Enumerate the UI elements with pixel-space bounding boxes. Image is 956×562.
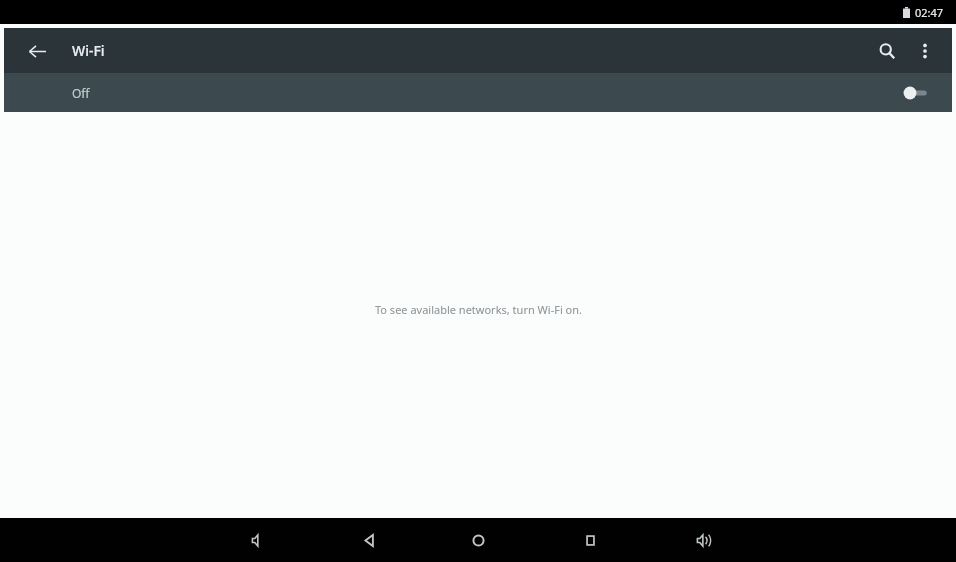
staticText: 02:47 xyxy=(915,5,944,20)
button[interactable]: Home xyxy=(454,518,502,562)
button[interactable]: Recent apps xyxy=(566,518,614,562)
button[interactable]: Volume up xyxy=(678,518,726,562)
staticText: To see available networks, turn Wi-Fi on… xyxy=(375,302,582,317)
staticText: Off xyxy=(72,85,90,101)
staticText: Wi-Fi xyxy=(72,41,105,60)
button[interactable]: Volume down xyxy=(233,518,281,562)
button[interactable]: Search xyxy=(868,32,906,70)
button[interactable]: More options xyxy=(906,32,944,70)
button[interactable]: Off xyxy=(4,73,952,112)
button[interactable]: Back xyxy=(19,33,55,69)
button[interactable]: Back xyxy=(345,518,393,562)
